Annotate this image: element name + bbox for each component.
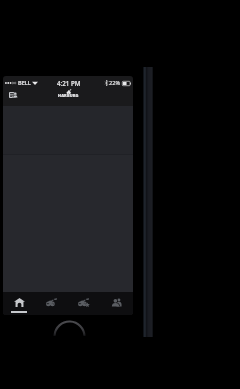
staticText: 4:21 PM	[57, 79, 81, 87]
button[interactable]: Friends	[100, 292, 133, 315]
button[interactable]: Harburg home	[58, 92, 79, 98]
button[interactable]: Profile	[5, 86, 22, 103]
staticText: HARBURG	[58, 93, 79, 98]
button[interactable]: Featured	[67, 292, 100, 315]
staticText: 22%	[109, 79, 121, 87]
button[interactable]: Play	[35, 292, 67, 315]
staticText: BELL	[18, 79, 31, 87]
button[interactable]: Home	[3, 292, 35, 315]
